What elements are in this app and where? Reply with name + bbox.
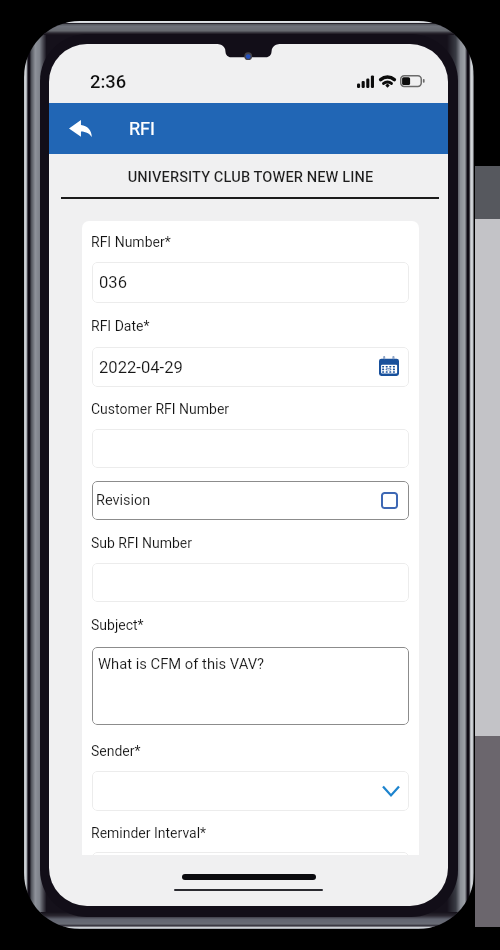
staticText: Revision [96,492,151,509]
staticText: What is CFM of this VAV? [98,655,265,672]
staticText: RFI [129,118,155,139]
staticText: UNIVERSITY CLUB TOWER NEW LINE [51,168,448,185]
staticText: 2022-04-29 [99,358,183,377]
button[interactable]: 036 [92,262,409,303]
staticText: 036 [99,273,127,292]
button[interactable] [92,852,409,855]
button[interactable]: 2022-04-29 [92,347,409,387]
button[interactable]: Open sender list [92,771,409,811]
staticText: 2:36 [90,71,127,93]
staticText: Sub RFI Number [91,535,193,551]
button[interactable]: What is CFM of this VAV? [92,647,409,725]
button[interactable]: Back [57,107,101,151]
button[interactable]: Revision [92,481,409,520]
button[interactable] [92,563,409,602]
button[interactable]: Revision toggle [381,492,398,509]
staticText: RFI Number* [91,234,171,250]
staticText: Reminder Interval* [91,825,207,841]
staticText: RFI Date* [91,318,150,334]
staticText: Customer RFI Number [91,401,230,417]
staticText: Subject* [91,617,144,633]
button[interactable]: Select date [379,356,399,376]
button[interactable] [92,429,409,468]
button[interactable]: Open sender list [383,786,399,796]
staticText: Sender* [91,743,141,759]
